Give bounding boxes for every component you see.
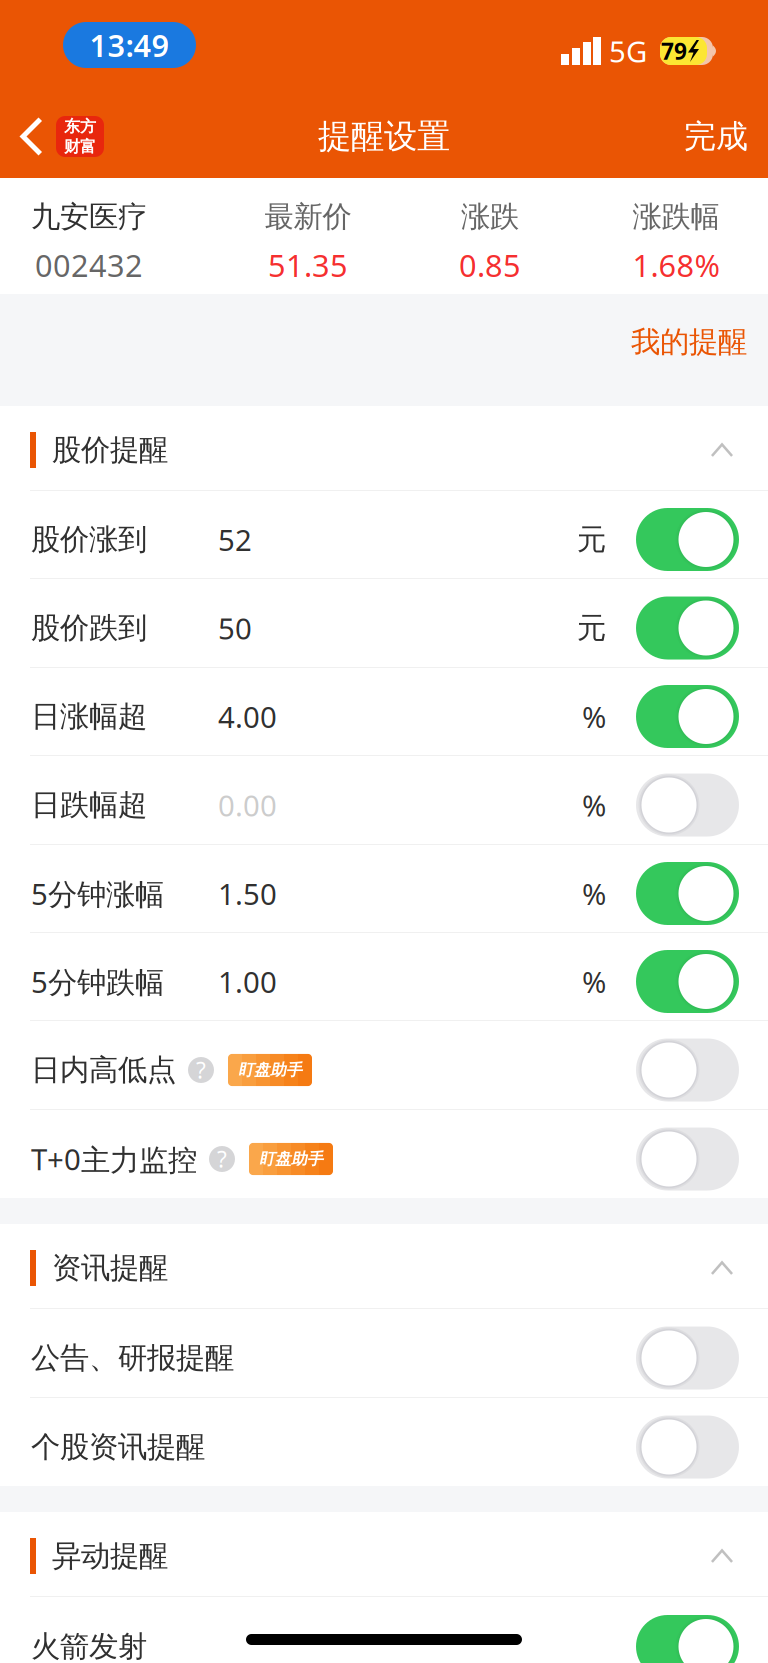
button[interactable]: 5分钟跌幅 xyxy=(0,933,768,1020)
staticText: 完成 xyxy=(684,116,748,157)
staticText: 财富 xyxy=(64,136,96,157)
staticText: 13:49 xyxy=(89,24,169,66)
staticText: 50 xyxy=(218,608,252,648)
staticText: 东方 xyxy=(64,116,96,136)
staticText: 1.50 xyxy=(218,873,277,913)
staticText: 股价跌到 xyxy=(31,609,147,646)
staticText: 元 xyxy=(577,609,606,646)
button[interactable]: 日跌幅超 xyxy=(0,756,768,844)
button[interactable]: Toggle off xyxy=(636,1415,739,1478)
button[interactable]: Toggle on xyxy=(636,685,739,748)
button[interactable]: 股价提醒 xyxy=(0,406,768,490)
button[interactable]: 公告、研报提醒 xyxy=(0,1309,768,1397)
button[interactable]: Toggle off xyxy=(636,1038,739,1101)
staticText: 股价涨到 xyxy=(31,521,147,558)
staticText: 公告、研报提醒 xyxy=(31,1339,234,1376)
staticText: % xyxy=(582,696,606,736)
staticText: 0.85 xyxy=(459,244,521,286)
button[interactable]: 日内高低点 xyxy=(0,1021,768,1109)
button[interactable]: 火箭发射 xyxy=(0,1597,768,1663)
button[interactable]: 5分钟涨幅 xyxy=(0,845,768,932)
staticText: T+0主力监控 xyxy=(31,1139,197,1179)
staticText: 日跌幅超 xyxy=(31,786,147,823)
staticText: 盯盘助手 xyxy=(238,1060,302,1080)
staticText: 002432 xyxy=(35,244,143,286)
staticText: 涨跌幅 xyxy=(632,198,719,235)
staticText: 52 xyxy=(218,519,252,559)
staticText: 51.35 xyxy=(268,244,348,286)
staticText: 5G xyxy=(609,31,647,71)
staticText: 5分钟涨幅 xyxy=(31,873,164,913)
staticText: 九安医疗 xyxy=(31,198,147,235)
staticText: ? xyxy=(217,1144,227,1174)
staticText: 元 xyxy=(577,521,606,558)
button[interactable]: Toggle on xyxy=(636,862,739,925)
staticText: 1.68% xyxy=(632,244,719,286)
button[interactable]: Toggle on xyxy=(636,596,739,659)
button[interactable]: Toggle on xyxy=(636,1615,739,1663)
staticText: 4.00 xyxy=(218,696,277,736)
staticText: 1.00 xyxy=(218,961,277,1001)
staticText: 涨跌 xyxy=(461,198,519,235)
button[interactable]: 资讯提醒 xyxy=(0,1224,768,1308)
staticText: % xyxy=(582,961,606,1001)
staticText: 0.00 xyxy=(218,785,277,825)
staticText: 异动提醒 xyxy=(52,1537,168,1574)
button[interactable]: Toggle off xyxy=(636,773,739,836)
staticText: 日涨幅超 xyxy=(31,698,147,735)
button[interactable]: Toggle on xyxy=(636,508,739,571)
staticText: 最新价 xyxy=(264,198,351,235)
button[interactable]: Toggle off xyxy=(636,1326,739,1389)
staticText: 5分钟跌幅 xyxy=(31,961,164,1001)
button[interactable]: 日涨幅超 xyxy=(0,668,768,755)
button[interactable]: 股价涨到 xyxy=(0,491,768,578)
staticText: ? xyxy=(196,1055,206,1085)
button[interactable]: 完成 xyxy=(664,95,768,178)
button[interactable]: 股价跌到 xyxy=(0,579,768,667)
staticText: 个股资讯提醒 xyxy=(31,1428,205,1465)
staticText: 火箭发射 xyxy=(31,1628,147,1663)
staticText: 我的提醒 xyxy=(631,323,747,360)
staticText: 日内高低点 xyxy=(31,1051,176,1088)
staticText: 资讯提醒 xyxy=(52,1249,168,1286)
button[interactable]: Back xyxy=(0,95,116,178)
button[interactable]: 我的提醒 xyxy=(607,313,768,386)
staticText: 盯盘助手 xyxy=(259,1149,323,1169)
button[interactable]: Toggle off xyxy=(636,1127,739,1190)
button[interactable]: 异动提醒 xyxy=(0,1512,768,1596)
button[interactable]: T+0主力监控 xyxy=(0,1110,768,1198)
staticText: 79 xyxy=(661,36,687,66)
button[interactable]: 个股资讯提醒 xyxy=(0,1398,768,1486)
staticText: % xyxy=(582,785,606,825)
staticText: % xyxy=(582,873,606,913)
staticText: 股价提醒 xyxy=(52,431,168,468)
staticText: 提醒设置 xyxy=(318,115,450,157)
button[interactable]: Toggle on xyxy=(636,950,739,1013)
